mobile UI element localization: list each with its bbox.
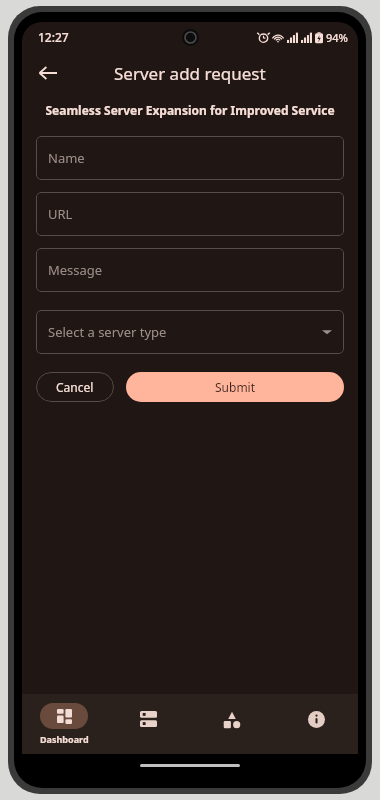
staticText: 12:27 [38,29,69,45]
staticText: Select a server type [48,323,167,341]
staticText: Cancel [56,379,94,395]
button[interactable]: Categories [190,694,274,754]
staticText: Seamless Server Expansion for Improved S… [34,102,346,118]
staticText: Message [48,261,103,279]
staticText: Dashboard [40,733,89,745]
staticText: Submit [215,379,256,395]
button[interactable]: Info [274,694,358,754]
button[interactable]: Servers [106,694,190,754]
button[interactable]: Cancel [36,372,114,402]
button[interactable]: Submit [126,372,344,402]
button[interactable]: Select a server type [36,310,344,354]
staticText: Server add request [114,62,266,85]
button[interactable]: Name [36,136,344,180]
staticText: Name [48,149,85,167]
button[interactable]: URL [36,192,344,236]
staticText: URL [48,205,73,223]
staticText: 94% [326,30,348,45]
button[interactable]: Dashboard [22,694,106,754]
button[interactable]: Back [28,53,68,93]
button[interactable]: Message [36,248,344,292]
